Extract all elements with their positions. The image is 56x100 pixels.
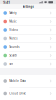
button[interactable]: Siri: [0, 60, 56, 68]
staticText: Mobile Data: [9, 79, 25, 83]
staticText: Cloud Drive: [9, 92, 26, 95]
staticText: Music: [9, 20, 16, 23]
button[interactable]: Cloud Drive: [0, 87, 56, 99]
staticText: Settings: [22, 5, 33, 8]
staticText: Notes: [9, 37, 17, 40]
staticText: Siri: [9, 62, 13, 66]
button[interactable]: Sounds: [0, 43, 56, 51]
staticText: Search: [9, 54, 17, 57]
button[interactable]: Notes: [0, 34, 56, 43]
button[interactable]: Video: [0, 26, 56, 34]
button[interactable]: Safety: [0, 9, 56, 17]
staticText: Safety: [9, 11, 16, 15]
staticText: Sounds: [9, 45, 19, 49]
button[interactable]: Search: [0, 51, 56, 60]
button[interactable]: Music: [0, 17, 56, 26]
button[interactable]: Mobile Data: [0, 75, 56, 87]
staticText: 9:41: [3, 0, 10, 5]
staticText: Video: [9, 28, 18, 32]
